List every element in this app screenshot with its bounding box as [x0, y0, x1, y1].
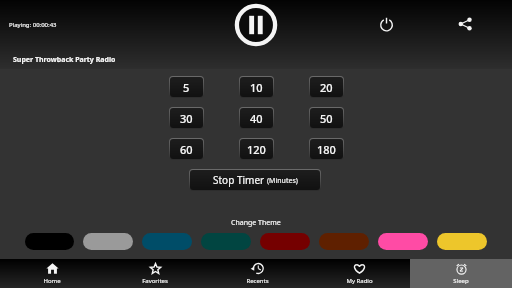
button[interactable]: Home [0, 259, 103, 288]
button[interactable]: Theme colour [25, 233, 74, 250]
button[interactable]: 5 [169, 76, 204, 98]
button[interactable]: 10 [239, 76, 274, 98]
button[interactable]: Theme colour [378, 233, 428, 250]
staticText: Sleep [453, 277, 469, 285]
button[interactable]: 40 [239, 107, 274, 129]
staticText: 10 [250, 80, 263, 95]
staticText: 120 [247, 142, 266, 157]
button[interactable]: Theme colour [260, 233, 310, 250]
button[interactable]: Theme colour [319, 233, 369, 250]
button[interactable]: Pause [234, 3, 278, 47]
button[interactable]: 60 [169, 138, 204, 160]
staticText: Recents [246, 277, 269, 285]
staticText: Change Theme [231, 218, 281, 228]
staticText: 40 [250, 111, 263, 126]
button[interactable]: Theme colour [437, 233, 487, 250]
button[interactable]: 180 [309, 138, 344, 160]
button[interactable]: Share [452, 11, 477, 36]
button[interactable]: Stop Timer [189, 169, 321, 191]
staticText: (Minutes) [267, 176, 298, 186]
staticText: 180 [317, 142, 336, 157]
staticText: 30 [180, 111, 193, 126]
staticText: Playing: 00:00:43 [9, 21, 57, 29]
button[interactable]: Theme colour [201, 233, 251, 250]
staticText: Super Throwback Party Radio [13, 55, 116, 65]
staticText: 50 [320, 111, 333, 126]
button[interactable]: My Radio [308, 259, 410, 288]
button[interactable]: 30 [169, 107, 204, 129]
button[interactable]: 120 [239, 138, 274, 160]
staticText: My Radio [346, 277, 373, 285]
staticText: Home [43, 277, 61, 285]
button[interactable]: 50 [309, 107, 344, 129]
button[interactable]: Favorites [103, 259, 206, 288]
staticText: 60 [180, 142, 193, 157]
staticText: Favorites [142, 277, 168, 285]
button[interactable]: Recents [206, 259, 308, 288]
button[interactable]: Power [374, 11, 399, 36]
staticText: 20 [320, 80, 333, 95]
button[interactable]: Theme colour [83, 233, 133, 250]
button[interactable]: Theme colour [142, 233, 192, 250]
staticText: Stop Timer [213, 173, 267, 187]
button[interactable]: Sleep [410, 259, 512, 288]
button[interactable]: 20 [309, 76, 344, 98]
staticText: 5 [183, 80, 190, 95]
